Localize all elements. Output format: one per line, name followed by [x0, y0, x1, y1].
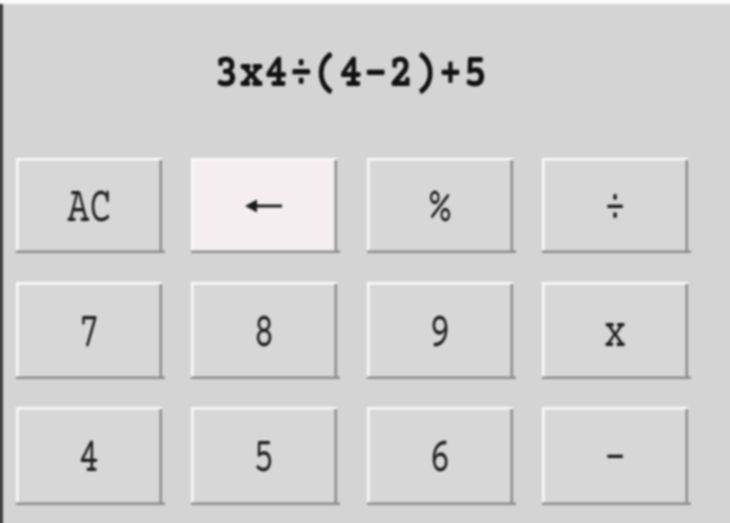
button[interactable]: 9 — [367, 282, 513, 379]
staticText: % — [429, 180, 451, 238]
button[interactable]: 8 — [191, 282, 337, 379]
button[interactable]: 5 — [191, 407, 337, 505]
staticText: 5 — [253, 430, 275, 488]
staticText: 4 — [78, 430, 100, 488]
staticText: 6 — [429, 430, 451, 488]
staticText: 3x4÷(4-2)+5 — [214, 47, 488, 103]
staticText: 7 — [78, 305, 100, 363]
button[interactable]: x — [542, 282, 688, 379]
button[interactable] — [191, 158, 337, 253]
staticText: - — [604, 430, 626, 488]
button[interactable]: % — [367, 158, 513, 253]
button[interactable]: 4 — [16, 407, 162, 505]
button[interactable]: 7 — [16, 282, 162, 379]
button[interactable]: - — [542, 407, 688, 505]
staticText: x — [604, 305, 626, 363]
button[interactable]: ÷ — [542, 158, 688, 253]
staticText: 8 — [253, 305, 275, 363]
button[interactable]: 6 — [367, 407, 513, 505]
staticText: 9 — [429, 305, 451, 363]
button[interactable]: AC — [16, 158, 162, 253]
staticText: ÷ — [604, 180, 626, 238]
staticText: AC — [67, 180, 112, 238]
